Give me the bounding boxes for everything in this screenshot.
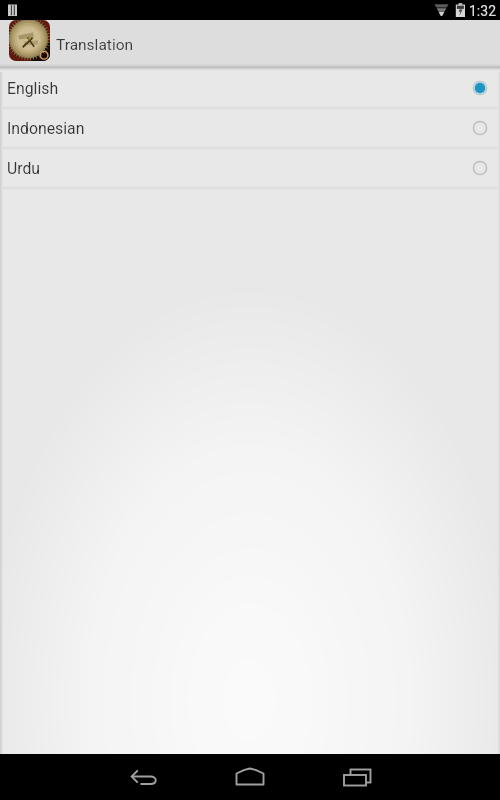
staticText: Urdu (7, 159, 41, 178)
button[interactable]: App icon (9, 20, 50, 61)
button[interactable]: Urdu (0, 148, 500, 188)
staticText: English (7, 79, 59, 98)
button[interactable]: English (0, 68, 500, 108)
button[interactable]: Recents (315, 754, 395, 800)
staticText: Translation (56, 36, 134, 54)
button[interactable]: Home (210, 754, 290, 800)
staticText: 1:32 (469, 3, 496, 19)
staticText: Indonesian (7, 119, 85, 138)
button[interactable]: Indonesian (0, 108, 500, 148)
button[interactable]: Back (105, 754, 185, 800)
